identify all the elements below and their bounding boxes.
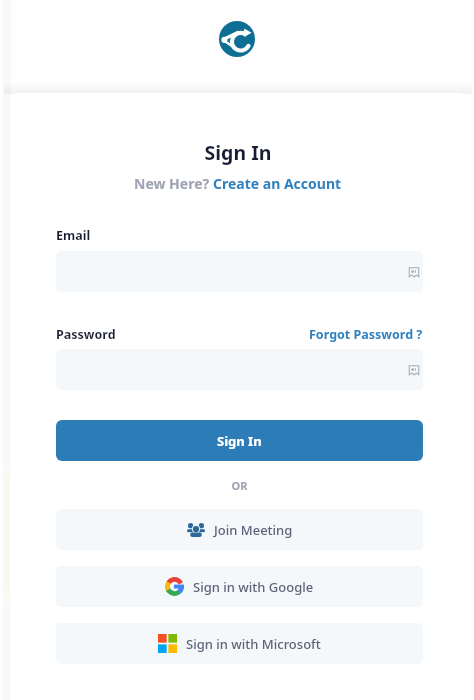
button[interactable]: Sign in with Google — [56, 566, 423, 607]
button[interactable]: Forgot Password ? — [309, 326, 423, 343]
button[interactable]: Join Meeting — [56, 509, 423, 550]
other: Autofill — [407, 363, 421, 377]
button[interactable]: Sign In — [56, 420, 423, 461]
button[interactable]: Autofill — [56, 251, 423, 292]
other: App logo — [219, 21, 255, 57]
staticText: Sign In — [217, 432, 262, 450]
staticText: OR — [56, 478, 423, 493]
staticText: Email — [56, 227, 91, 244]
staticText: Sign In — [10, 139, 466, 166]
staticText: New Here? — [134, 174, 213, 193]
staticText: Join Meeting — [214, 521, 293, 539]
other: Autofill — [407, 265, 421, 279]
staticText: Password — [56, 326, 116, 343]
staticText: Sign in with Google — [193, 578, 314, 596]
button[interactable]: Create an Account — [213, 174, 342, 193]
staticText: Sign in with Microsoft — [186, 635, 321, 653]
button[interactable]: Sign in with Microsoft — [56, 623, 423, 664]
button[interactable]: Autofill — [56, 349, 423, 390]
